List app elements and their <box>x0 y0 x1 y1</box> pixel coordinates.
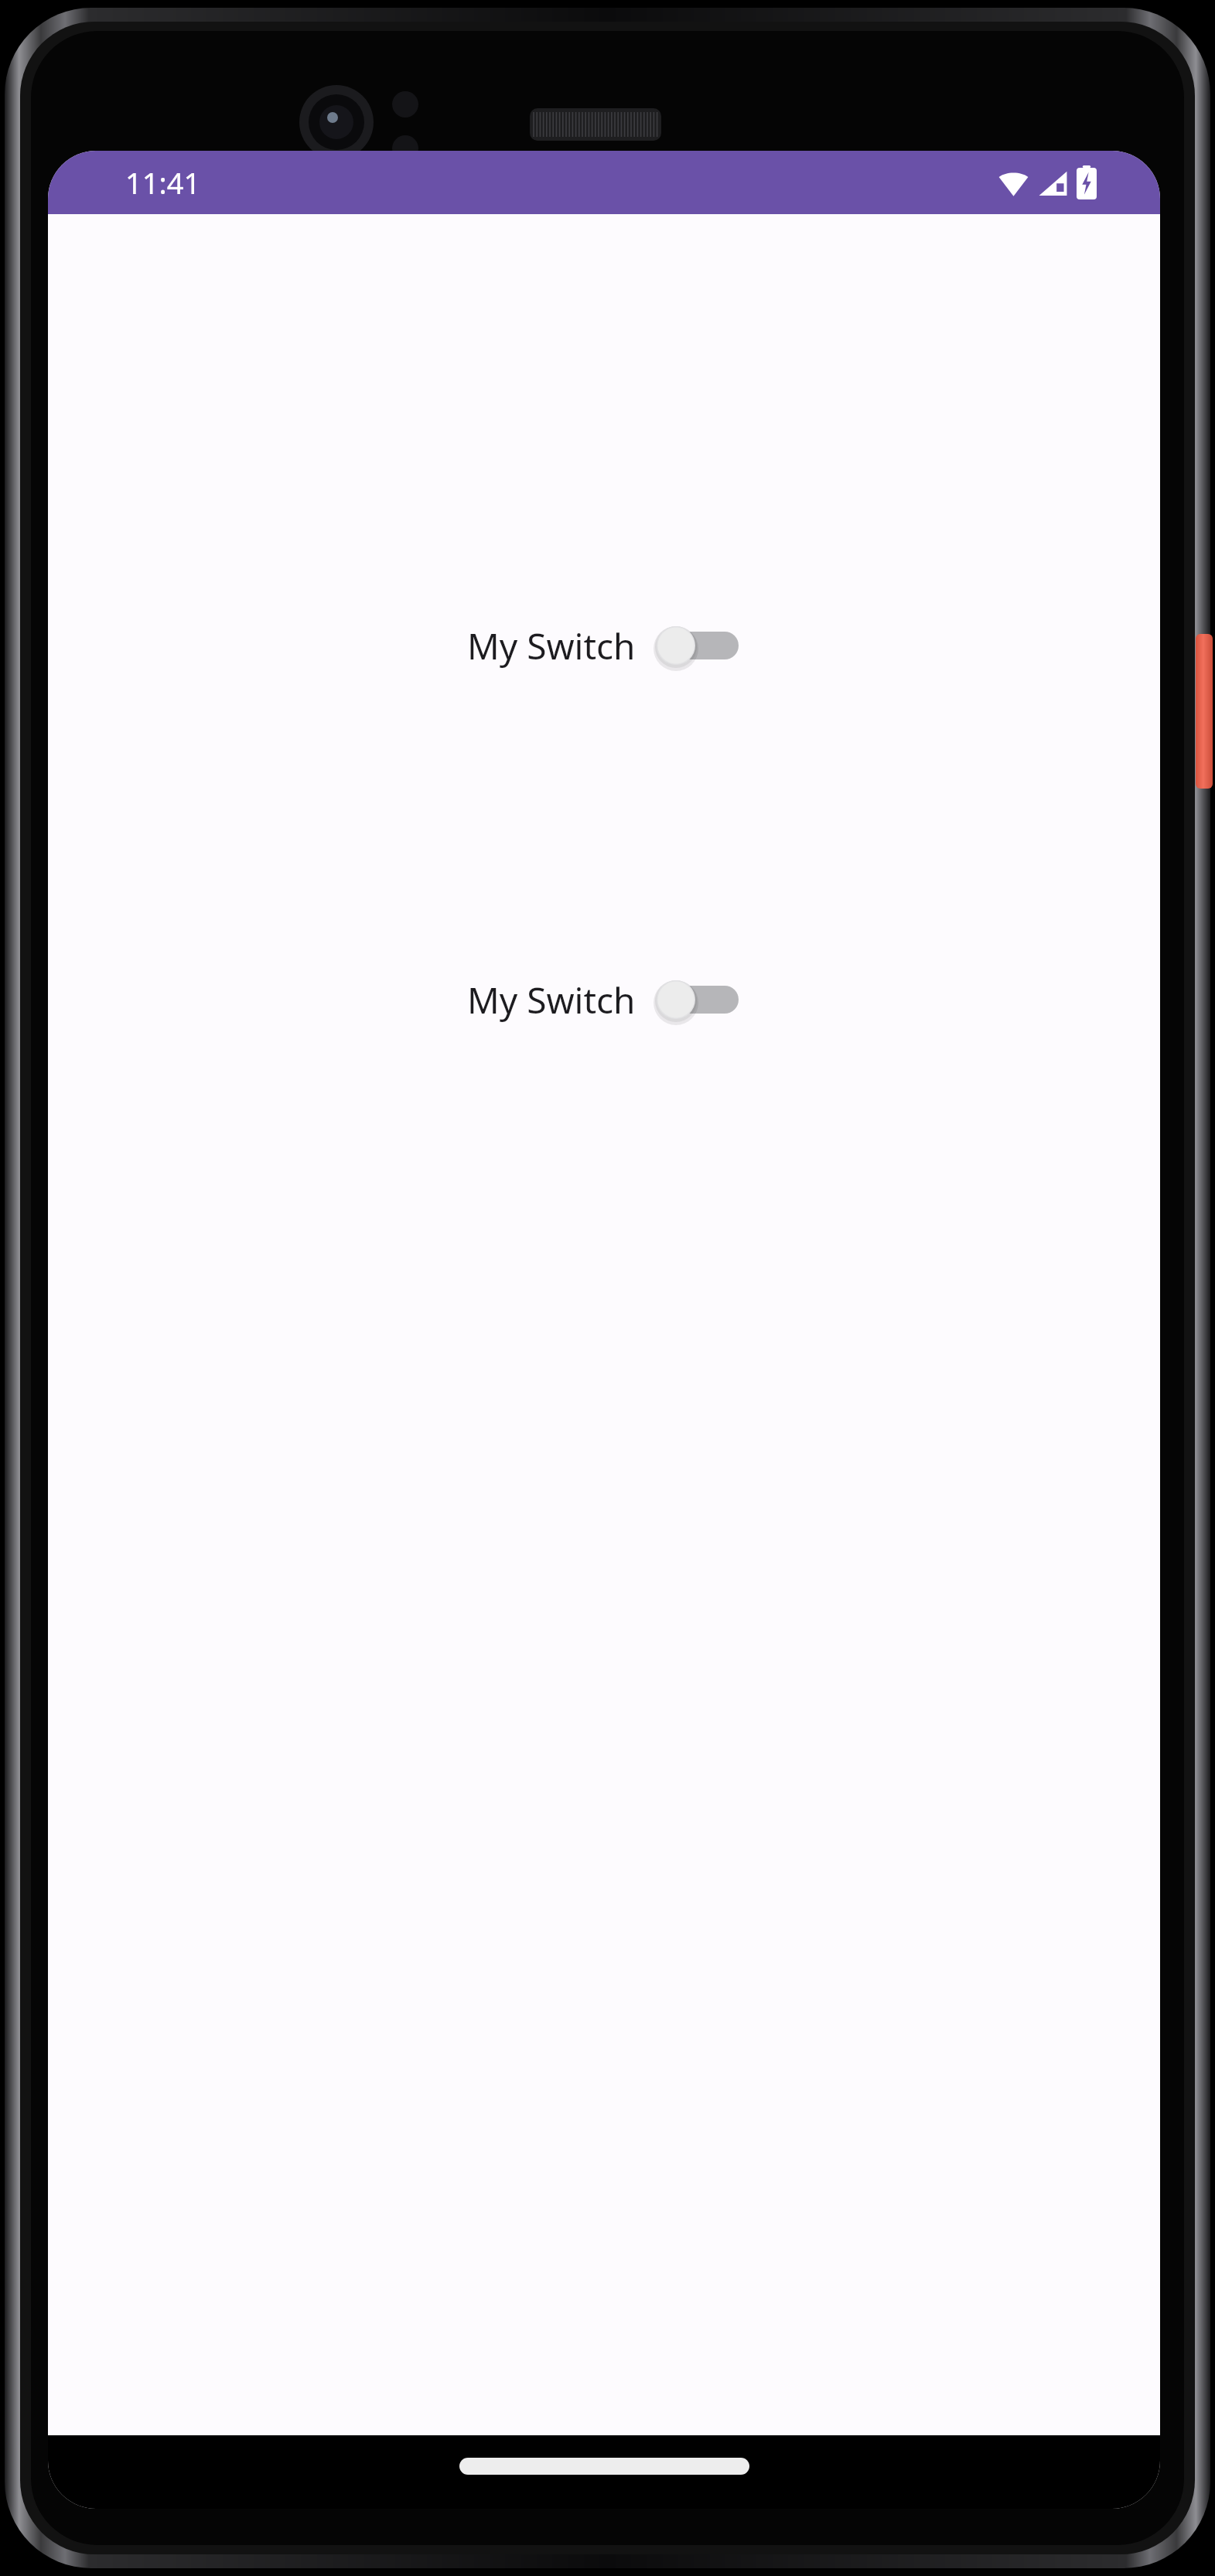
other: Power button <box>1196 634 1213 789</box>
button[interactable]: Toggle My Switch <box>654 976 741 1024</box>
button[interactable]: Toggle My Switch <box>654 622 741 670</box>
staticText: My Switch <box>467 976 636 1024</box>
staticText: 11:41 <box>125 162 201 203</box>
button[interactable]: My Switch <box>467 618 741 673</box>
button[interactable]: My Switch <box>467 973 741 1027</box>
staticText: My Switch <box>467 622 636 670</box>
